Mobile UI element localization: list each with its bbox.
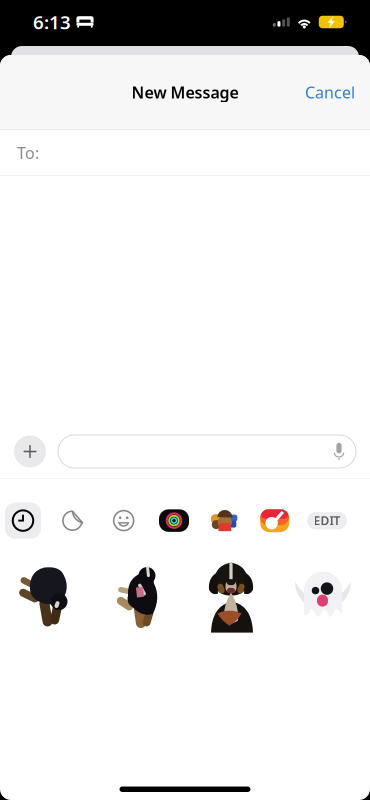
staticText: New Message <box>131 82 238 103</box>
button[interactable]: Memoji stickers <box>206 503 242 539</box>
staticText: To: <box>17 142 39 163</box>
staticText: EDIT <box>313 513 340 528</box>
button[interactable]: GarageBand <box>257 503 293 539</box>
button[interactable]: Memoji <box>106 503 142 539</box>
button[interactable]: Ghost sticker <box>277 549 369 641</box>
button[interactable]: Add attachment <box>14 435 46 467</box>
button[interactable]: Stickers <box>55 503 91 539</box>
button[interactable]: Fitness <box>156 503 192 539</box>
button[interactable]: Dog sticker <box>185 549 277 641</box>
button[interactable]: Recents <box>5 503 41 539</box>
button[interactable]: Cancel <box>288 69 370 116</box>
button[interactable]: Dog sticker <box>93 549 185 641</box>
button[interactable] <box>58 435 356 468</box>
button[interactable]: EDIT <box>307 503 347 539</box>
staticText: Cancel <box>305 82 355 103</box>
button[interactable]: Dog sticker <box>1 549 93 641</box>
staticText: 6:13 <box>33 10 71 34</box>
